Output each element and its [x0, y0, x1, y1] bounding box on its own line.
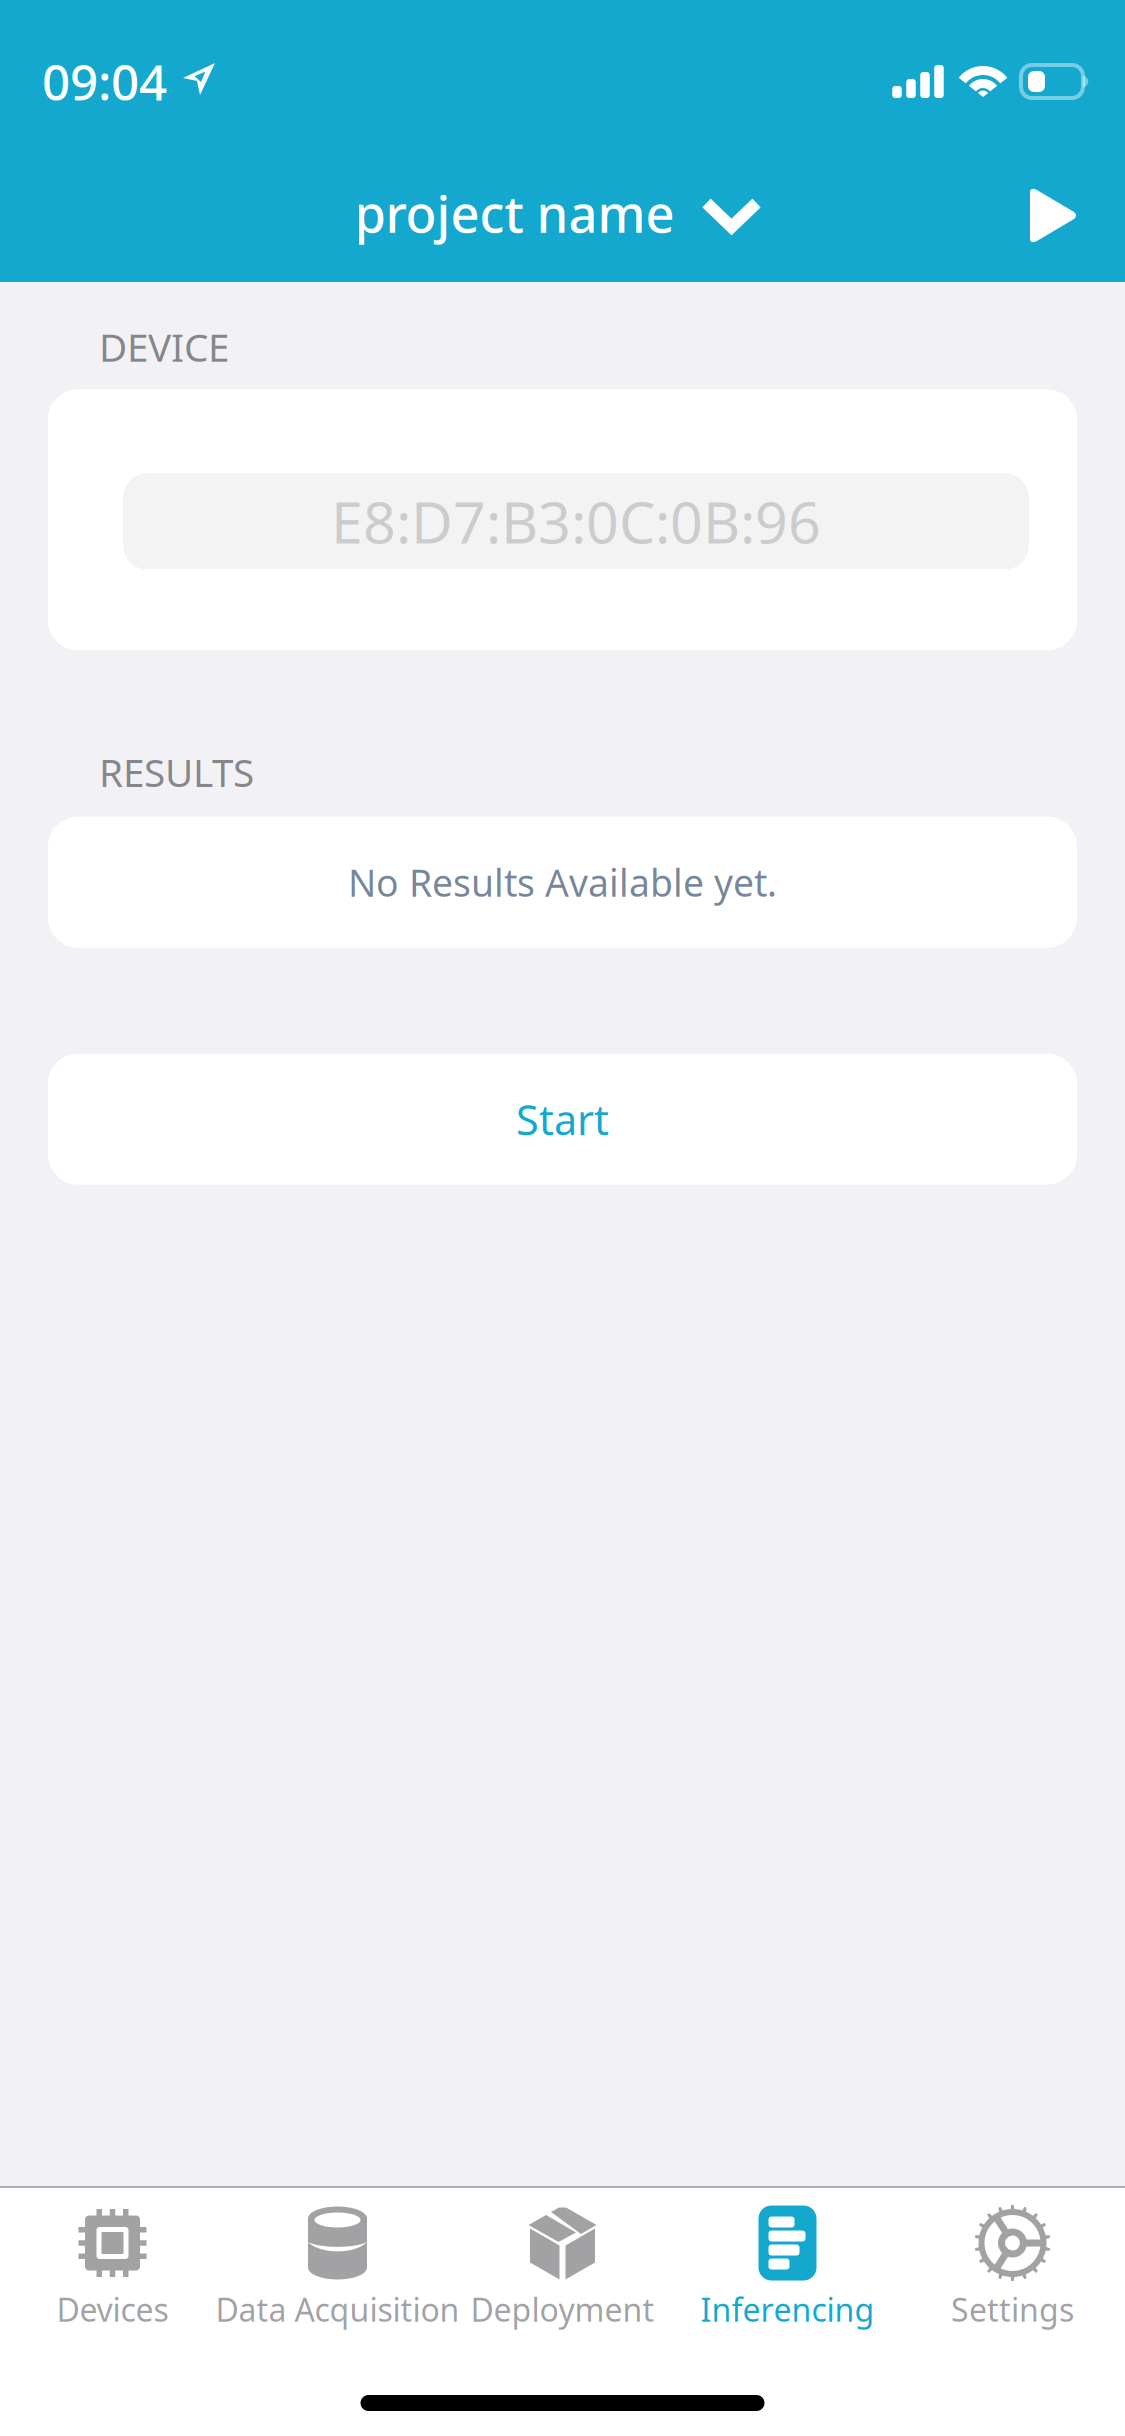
button[interactable]: Settings [900, 2186, 1125, 2330]
staticText: No Results Available yet. [348, 857, 777, 907]
button[interactable]: Data Acquisition [225, 2186, 450, 2330]
staticText: Inferencing [700, 2288, 874, 2330]
button[interactable]: Start [0, 1054, 1125, 1185]
button[interactable]: project name [348, 155, 776, 259]
staticText: DEVICE [99, 321, 229, 372]
staticText: Data Acquisition [215, 2288, 459, 2330]
button[interactable]: Deployment [450, 2186, 675, 2330]
staticText: 09:04 [42, 48, 167, 114]
staticText: RESULTS [99, 746, 254, 798]
staticText: E8:D7:B3:0C:0B:96 [331, 483, 821, 559]
staticText: Devices [56, 2288, 168, 2330]
button[interactable]: Inferencing [675, 2186, 900, 2330]
staticText: project name [354, 179, 674, 247]
button[interactable]: Devices [0, 2186, 225, 2330]
staticText: Settings [951, 2288, 1074, 2330]
staticText: Deployment [470, 2288, 654, 2330]
button[interactable]: Run [995, 151, 1125, 262]
staticText: Start [516, 1092, 609, 1147]
